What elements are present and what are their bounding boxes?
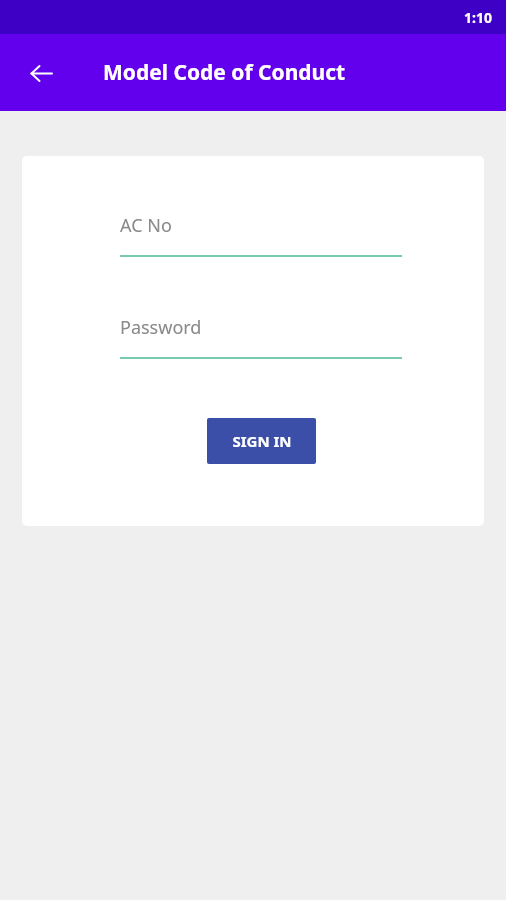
staticText: Password xyxy=(120,315,202,340)
button[interactable]: Password xyxy=(120,315,402,359)
button[interactable]: SIGN IN xyxy=(207,418,316,464)
staticText: SIGN IN xyxy=(232,431,292,451)
staticText: 1:10 xyxy=(464,8,492,27)
button[interactable]: Back xyxy=(17,49,65,97)
staticText: AC No xyxy=(120,213,172,238)
staticText: Model Code of Conduct xyxy=(103,58,346,87)
button[interactable]: AC No xyxy=(120,213,402,257)
